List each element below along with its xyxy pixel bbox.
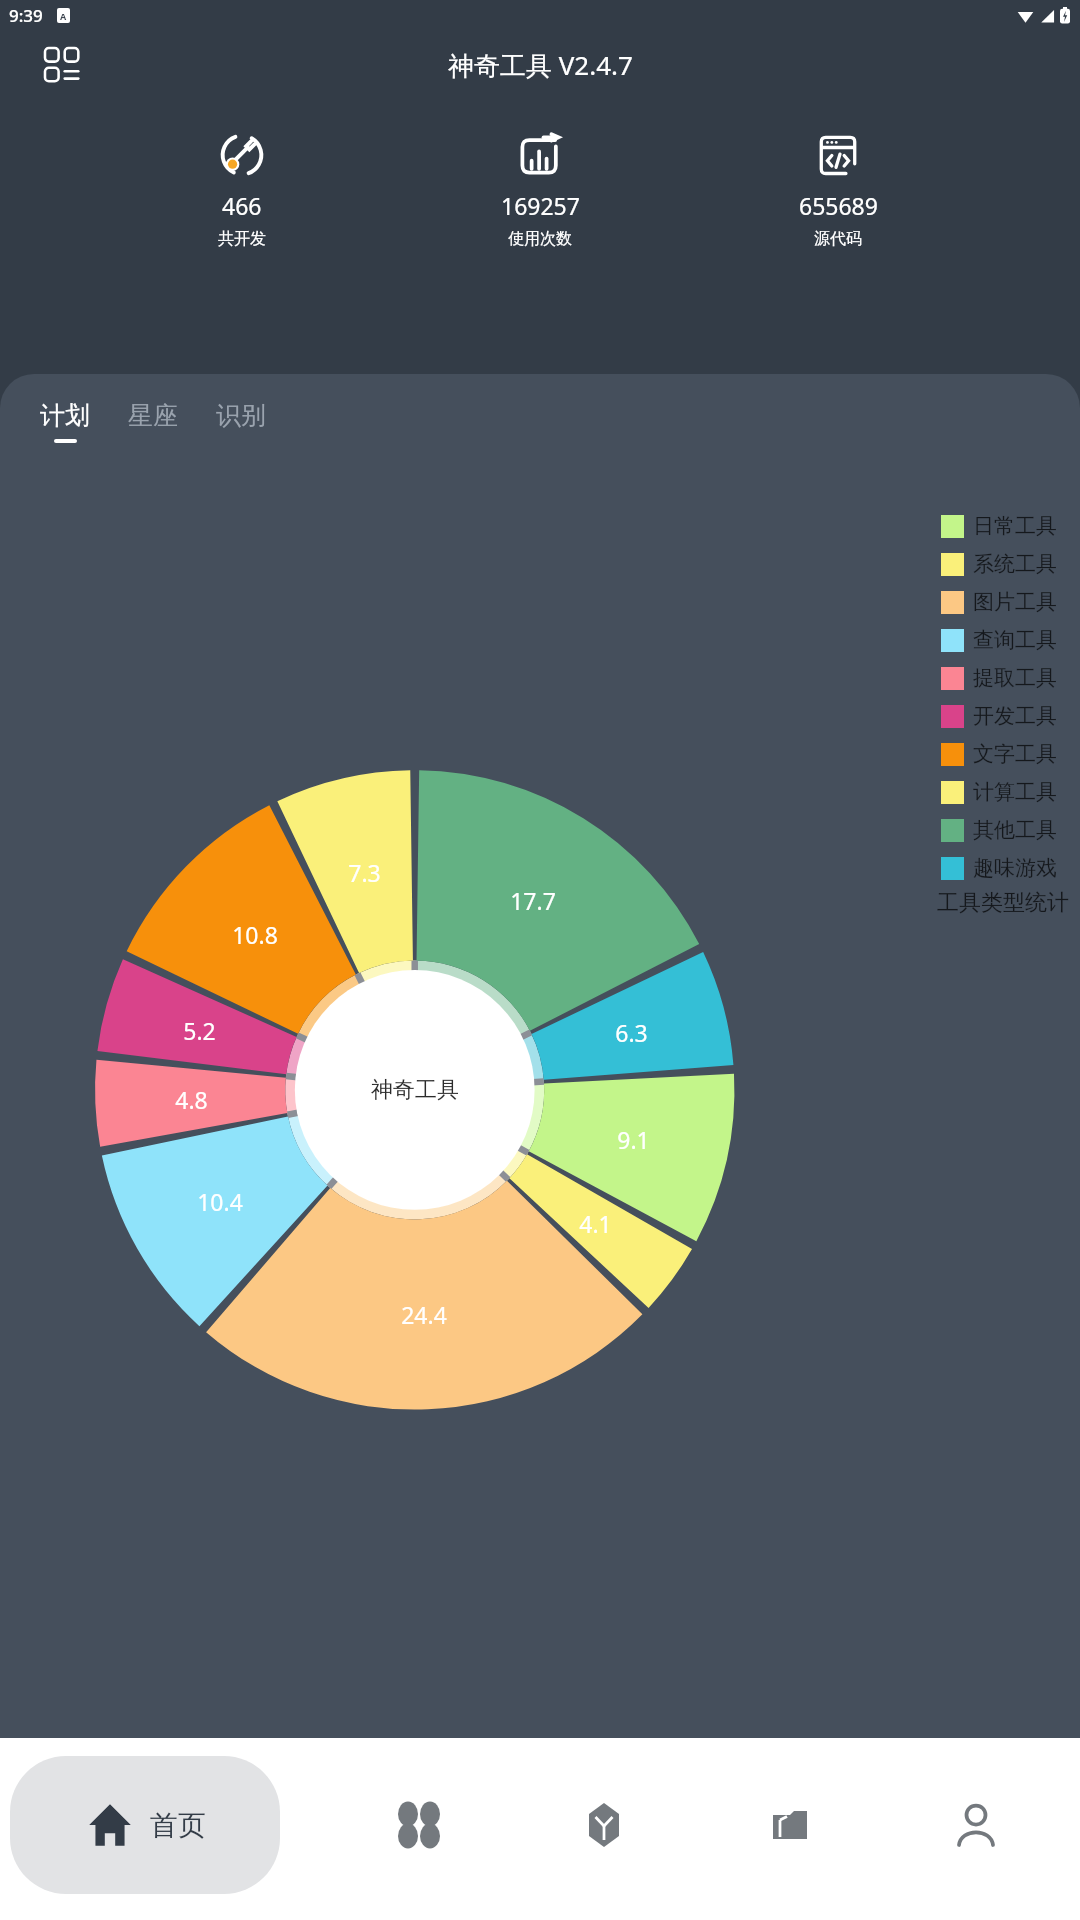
staticText: 首页: [150, 1808, 206, 1843]
staticText: 计划: [40, 400, 90, 431]
staticText: 识别: [216, 400, 266, 431]
button[interactable]: Menu: [531, 41, 579, 89]
button[interactable]: 图片工具: [941, 583, 1057, 621]
staticText: 4.1: [579, 1208, 612, 1239]
button[interactable]: 466: [172, 128, 312, 251]
button[interactable]: Profile: [930, 1779, 1022, 1871]
staticText: 源代码: [814, 229, 862, 249]
staticText: 文字工具: [973, 741, 1057, 767]
staticText: 655689: [799, 190, 878, 221]
button[interactable]: 计划: [32, 396, 98, 447]
staticText: 日常工具: [973, 513, 1057, 539]
staticText: 其他工具: [973, 817, 1057, 843]
staticText: 17.7: [510, 885, 556, 916]
button[interactable]: 169257: [470, 128, 610, 251]
staticText: 10.8: [232, 919, 278, 950]
staticText: 466: [222, 190, 262, 221]
button[interactable]: 文字工具: [941, 735, 1057, 773]
staticText: 4.8: [175, 1084, 208, 1115]
button[interactable]: 查询工具: [941, 621, 1057, 659]
button[interactable]: 开发工具: [941, 697, 1057, 735]
staticText: 169257: [501, 190, 580, 221]
button[interactable]: 计算工具: [941, 773, 1057, 811]
staticText: 6.3: [615, 1017, 648, 1048]
staticText: 提取工具: [973, 665, 1057, 691]
staticText: 9:39: [9, 4, 43, 27]
staticText: 图片工具: [973, 589, 1057, 615]
button[interactable]: 趣味游戏: [941, 849, 1057, 887]
staticText: 共开发: [218, 229, 266, 249]
button[interactable]: 其他工具: [941, 811, 1057, 849]
staticText: 开发工具: [973, 703, 1057, 729]
staticText: 查询工具: [973, 627, 1057, 653]
button[interactable]: 识别: [208, 396, 274, 447]
staticText: 24.4: [401, 1299, 447, 1330]
button[interactable]: Box: [558, 1779, 650, 1871]
staticText: 5.2: [183, 1015, 216, 1046]
staticText: 神奇工具 V2.4.7: [448, 47, 633, 83]
staticText: 工具类型统计: [937, 889, 1069, 917]
staticText: 神奇工具: [371, 1076, 459, 1104]
staticText: 10.4: [197, 1186, 243, 1217]
staticText: 9.1: [617, 1124, 650, 1155]
button[interactable]: 655689: [768, 128, 908, 251]
button[interactable]: Categories: [373, 1779, 465, 1871]
staticText: 7.3: [348, 857, 381, 888]
button[interactable]: 提取工具: [941, 659, 1057, 697]
button[interactable]: 日常工具: [941, 507, 1057, 545]
button[interactable]: Files: [744, 1779, 836, 1871]
staticText: 计算工具: [973, 779, 1057, 805]
staticText: 使用次数: [508, 229, 572, 249]
staticText: 星座: [128, 400, 178, 431]
button[interactable]: Menu: [38, 41, 86, 89]
button[interactable]: 系统工具: [941, 545, 1057, 583]
staticText: A: [60, 10, 67, 22]
button[interactable]: 首页: [10, 1756, 280, 1894]
staticText: 系统工具: [973, 551, 1057, 577]
button[interactable]: 星座: [120, 396, 186, 447]
staticText: 趣味游戏: [973, 855, 1057, 881]
